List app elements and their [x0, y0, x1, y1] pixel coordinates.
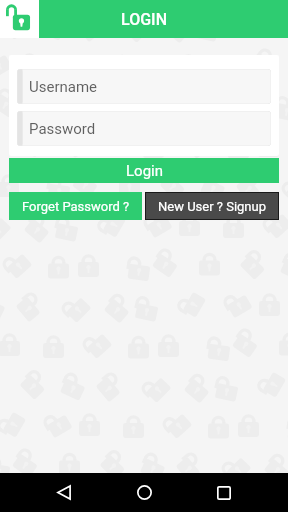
button[interactable]: Login — [9, 158, 279, 183]
button[interactable]: App logo — [0, 0, 39, 38]
button[interactable]: Home — [104, 473, 184, 512]
button[interactable]: Password — [17, 111, 271, 146]
staticText: Password — [29, 120, 96, 138]
button[interactable]: Back — [24, 473, 104, 512]
staticText: Username — [29, 78, 98, 96]
button[interactable]: New User ? Signup — [145, 192, 279, 220]
staticText: Login — [126, 162, 163, 180]
button[interactable]: Forget Password ? — [9, 192, 142, 220]
staticText: New User ? Signup — [158, 199, 267, 214]
staticText: Forget Password ? — [22, 199, 130, 214]
button[interactable]: Username — [17, 69, 271, 104]
staticText: LOGIN — [121, 10, 167, 29]
button[interactable]: Recent apps — [184, 473, 264, 512]
